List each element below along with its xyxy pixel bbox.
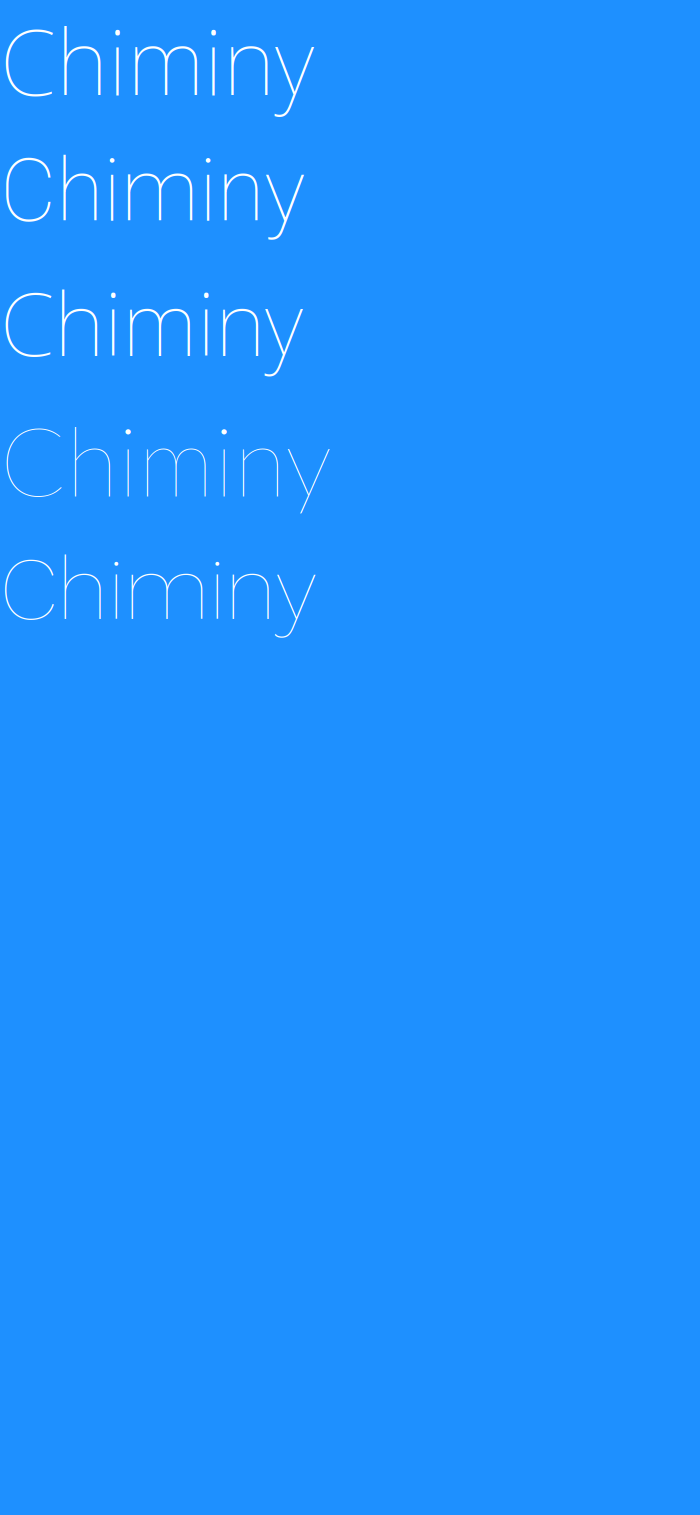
staticText: Chiminy [0, 0, 314, 120]
staticText: Chiminy [0, 262, 303, 382]
staticText: Chiminy [0, 537, 317, 640]
staticText: Chiminy [0, 140, 305, 242]
staticText: Chiminy [0, 402, 332, 517]
